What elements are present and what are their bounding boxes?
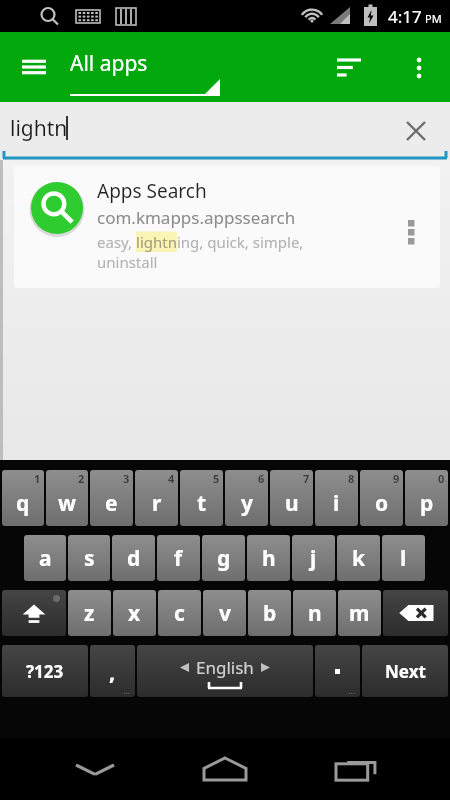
staticText: a [39, 544, 52, 573]
button[interactable]: Home [189, 738, 261, 800]
button[interactable]: Shift [2, 590, 66, 636]
staticText: m [349, 599, 370, 628]
button[interactable]: lightn [0, 102, 450, 160]
button[interactable]: Clear search [396, 111, 436, 151]
button[interactable]: n [293, 590, 336, 636]
staticText: 9 [393, 471, 400, 486]
button[interactable]: More options [396, 44, 442, 90]
button[interactable]: e [90, 470, 133, 526]
staticText: easy, lightning, quick, simple, uninstal… [97, 232, 304, 272]
staticText: 7 [303, 471, 310, 486]
staticText: 2 [78, 471, 85, 486]
staticText: p [420, 489, 434, 518]
staticText: s [84, 544, 95, 573]
staticText: Apps Search [97, 178, 207, 204]
staticText: u [285, 489, 299, 518]
staticText: , [109, 656, 116, 686]
staticText: h [262, 544, 276, 573]
button[interactable]: s [68, 535, 110, 581]
button[interactable]: x [113, 590, 156, 636]
staticText: ... [123, 684, 131, 696]
staticText: j [310, 544, 317, 573]
staticText: w [58, 489, 76, 518]
button[interactable]: b [248, 590, 291, 636]
staticText: PM [425, 11, 442, 26]
staticText: k [352, 544, 366, 573]
button[interactable]: d [112, 535, 155, 581]
button[interactable]: u [270, 470, 313, 526]
button[interactable]: g [202, 535, 245, 581]
button[interactable]: h [247, 535, 290, 581]
staticText: 6 [258, 471, 265, 486]
staticText: i [333, 489, 340, 518]
button[interactable]: v [203, 590, 246, 636]
staticText: ?123 [26, 660, 64, 683]
button[interactable]: y [225, 470, 268, 526]
staticText: All apps [70, 49, 148, 78]
staticText: g [217, 544, 231, 573]
button[interactable]: Period [315, 645, 360, 697]
button[interactable]: i [315, 470, 358, 526]
staticText: l [400, 544, 407, 573]
button[interactable]: z [68, 590, 111, 636]
staticText: v [219, 599, 231, 628]
button[interactable]: App options [396, 166, 432, 288]
button[interactable]: ?123 [2, 645, 88, 697]
staticText: 5 [213, 471, 220, 486]
button[interactable]: o [360, 470, 403, 526]
button[interactable]: Apps Search [14, 166, 440, 288]
button[interactable]: Sort [326, 44, 372, 90]
button[interactable]: t [180, 470, 223, 526]
button[interactable]: All apps [70, 36, 220, 98]
staticText: d [127, 544, 141, 573]
staticText: e [105, 489, 118, 518]
staticText: z [84, 599, 95, 628]
button[interactable]: a [24, 535, 66, 581]
button[interactable]: m [338, 590, 381, 636]
button[interactable]: c [158, 590, 201, 636]
staticText: q [16, 489, 30, 518]
button[interactable]: Comma [90, 645, 135, 697]
staticText: o [375, 489, 389, 518]
button[interactable]: r [135, 470, 178, 526]
staticText: t [197, 489, 207, 518]
button[interactable]: Backspace [383, 590, 448, 636]
staticText: 1 [34, 471, 41, 486]
button[interactable]: Open navigation drawer [14, 47, 54, 87]
staticText: lightn [10, 114, 68, 143]
button[interactable]: p [405, 470, 448, 526]
staticText: com.kmapps.appssearch [97, 206, 296, 229]
staticText: 3 [123, 471, 130, 486]
staticText: ... [348, 684, 356, 696]
button[interactable]: Hide keyboard [59, 738, 131, 800]
staticText: 4:17 [388, 5, 422, 28]
staticText: c [174, 599, 185, 628]
staticText: f [174, 544, 183, 573]
staticText: 4 [168, 471, 175, 486]
button[interactable]: Recent apps [320, 738, 392, 800]
button[interactable]: Space, English [137, 645, 313, 697]
button[interactable]: l [382, 535, 425, 581]
staticText: 8 [348, 471, 355, 486]
staticText: x [128, 599, 141, 628]
button[interactable]: q [2, 470, 44, 526]
staticText: r [152, 489, 162, 518]
button[interactable]: f [157, 535, 200, 581]
staticText: b [263, 599, 277, 628]
staticText: y [241, 489, 253, 518]
staticText: n [308, 599, 322, 628]
button[interactable]: k [337, 535, 380, 581]
staticText: Next [385, 660, 426, 683]
button[interactable]: j [292, 535, 335, 581]
staticText: 0 [438, 471, 445, 486]
button[interactable]: w [46, 470, 88, 526]
staticText: English [196, 656, 254, 679]
button[interactable]: Next [362, 645, 448, 697]
